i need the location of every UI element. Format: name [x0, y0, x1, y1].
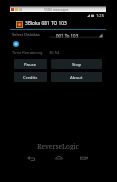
button[interactable]: 001 To 103: [50, 31, 103, 38]
staticText: 1:25: [96, 13, 104, 18]
staticText: 5584 messages: [44, 7, 69, 12]
staticText: Pause: [24, 61, 37, 67]
button[interactable]: Pause: [14, 59, 47, 69]
staticText: Select Dislokas: [12, 32, 40, 37]
staticText: Time Remaining: [12, 50, 43, 55]
staticText: 36:54: [49, 50, 60, 55]
staticText: Stop: [72, 61, 82, 67]
staticText: Credits: [23, 74, 38, 80]
button[interactable]: Back: [26, 154, 36, 162]
staticText: About: [70, 74, 83, 80]
button[interactable]: About: [51, 72, 102, 82]
button[interactable]: Home: [55, 154, 63, 162]
staticText: 3Bloka 081 TO 103: [25, 20, 67, 26]
button[interactable]: Credits: [14, 72, 47, 82]
staticText: 001 To 103: [56, 33, 79, 39]
button[interactable]: Recent apps: [80, 154, 89, 162]
button[interactable]: Stop: [51, 59, 102, 69]
staticText: ReverseLogic: [37, 142, 79, 150]
